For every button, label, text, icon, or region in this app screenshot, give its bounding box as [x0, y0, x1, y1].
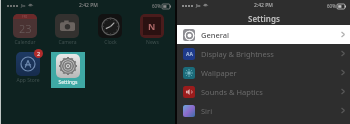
button[interactable]: Settings [53, 54, 83, 86]
staticText: AA [186, 51, 193, 58]
staticText: General [201, 30, 230, 40]
staticText: Camera [58, 39, 77, 46]
staticText: Sounds & Haptics [201, 87, 263, 97]
staticText: 2:42 PM [254, 2, 273, 9]
staticText: 23 [19, 21, 32, 36]
staticText: N [148, 20, 156, 32]
staticText: App Store [16, 77, 40, 84]
button[interactable]: Siri [177, 101, 350, 120]
staticText: 2:42 PM [79, 2, 98, 9]
staticText: Settings [248, 13, 280, 24]
button[interactable]: Sounds & Haptics [177, 82, 350, 101]
staticText: Wallpaper [201, 68, 237, 78]
staticText: Jio [196, 3, 201, 8]
staticText: Calendar [14, 39, 36, 46]
button[interactable]: N [135, 14, 169, 46]
staticText: 60% [327, 3, 336, 9]
staticText: Jio [21, 3, 26, 8]
button[interactable]: AA [177, 44, 350, 63]
staticText: Siri [201, 106, 213, 116]
button[interactable]: Camera [50, 14, 84, 46]
staticText: 60% [152, 3, 161, 9]
button[interactable]: General [177, 25, 350, 44]
button[interactable]: Wallpaper [177, 63, 350, 82]
button[interactable]: 2 [11, 52, 45, 84]
button[interactable]: FRI [8, 14, 42, 46]
staticText: Settings [58, 79, 78, 86]
button[interactable]: Clock [93, 14, 127, 46]
staticText: FRI [22, 14, 28, 19]
staticText: Clock [104, 39, 117, 46]
staticText: Display & Brightness [201, 49, 274, 59]
staticText: News [146, 39, 159, 46]
staticText: 2 [37, 50, 41, 57]
